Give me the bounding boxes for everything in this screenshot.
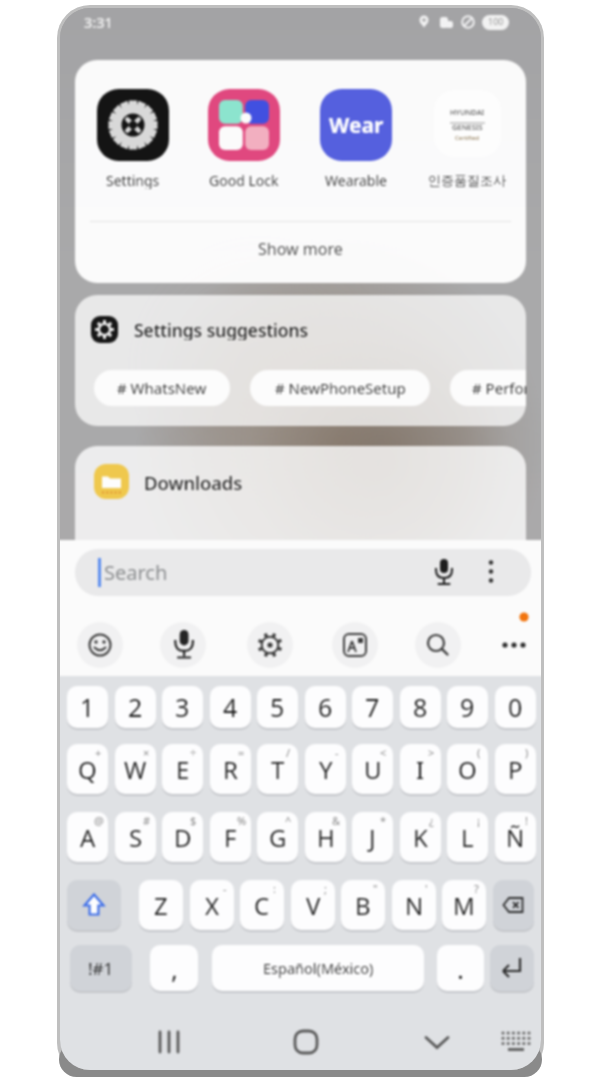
staticText: Downloads (144, 470, 243, 494)
staticText: Good Lock (209, 171, 279, 189)
staticText: ! (525, 813, 528, 828)
staticText: # NewPhoneSetup (275, 378, 406, 398)
staticText: " (373, 881, 378, 896)
staticText: Search (104, 559, 168, 586)
staticText: H (317, 821, 335, 854)
staticText: ¡ (477, 813, 480, 828)
staticText: O (458, 753, 477, 786)
staticText: Ñ (506, 821, 525, 854)
staticText: ÷ (190, 745, 197, 760)
staticText: P (508, 753, 523, 786)
staticText: L (461, 821, 474, 854)
staticText: > (428, 745, 435, 760)
staticText: 6 (318, 690, 333, 724)
staticText: C (254, 889, 270, 922)
staticText: Settings suggestions (134, 318, 309, 340)
staticText: Español(México) (263, 958, 374, 978)
staticText: J (369, 821, 376, 854)
staticText: , (171, 951, 178, 986)
staticText: # Performance (472, 378, 526, 398)
staticText: ) (525, 745, 529, 760)
staticText: V (306, 889, 321, 922)
staticText: N (405, 889, 424, 922)
staticText: ^ (285, 813, 292, 828)
staticText: Z (154, 889, 168, 922)
staticText: Show more (258, 238, 343, 260)
staticText: . (457, 951, 464, 986)
staticText: X (205, 889, 220, 922)
staticText: E (176, 753, 190, 786)
staticText: ' (425, 881, 428, 896)
staticText: G (269, 821, 287, 854)
staticText: & (332, 813, 341, 828)
staticText: 8 (413, 690, 428, 724)
staticText: @ (94, 813, 104, 828)
staticText: GENESIS (452, 122, 483, 132)
staticText: A (80, 821, 96, 854)
staticText: 5 (270, 690, 285, 724)
staticText: 인증품질조사 (428, 172, 506, 188)
staticText: 3:31 (84, 12, 113, 32)
staticText: - (335, 745, 339, 760)
staticText: ( (477, 745, 481, 760)
staticText: Settings (106, 171, 160, 189)
staticText: B (355, 889, 371, 922)
staticText: S (129, 821, 143, 854)
staticText: 100 (488, 15, 504, 27)
staticText: D (174, 821, 192, 854)
staticText: Wear (329, 111, 384, 140)
staticText: : (273, 881, 276, 896)
staticText: + (95, 745, 102, 760)
staticText: Wearable (325, 171, 387, 189)
staticText: % (237, 813, 247, 828)
staticText: < (380, 745, 387, 760)
staticText: T (271, 753, 285, 786)
staticText: R (223, 753, 238, 786)
staticText: × (143, 745, 150, 760)
staticText: 4 (223, 690, 238, 724)
staticText: F (224, 821, 237, 854)
staticText: HYUNDAI (450, 107, 485, 117)
staticText: Q (78, 753, 97, 786)
staticText: 7 (365, 690, 380, 724)
staticText: !#1 (88, 957, 114, 980)
staticText: $ (190, 813, 197, 828)
staticText: U (364, 753, 382, 786)
staticText: 9 (460, 690, 475, 724)
staticText: ? (474, 881, 479, 896)
staticText: K (413, 821, 428, 854)
staticText: W (124, 753, 147, 786)
staticText: M (453, 889, 475, 922)
staticText: 2 (128, 690, 143, 724)
staticText: ; (324, 881, 327, 896)
staticText: ¿ (429, 813, 434, 828)
staticText: * (380, 813, 387, 828)
staticText: I (416, 753, 425, 786)
staticText: 0 (508, 690, 523, 724)
staticText: # (143, 813, 151, 828)
staticText: Certified (455, 134, 480, 142)
staticText: 1 (80, 690, 95, 724)
staticText: # WhatsNew (117, 378, 207, 398)
staticText: = (238, 745, 245, 760)
staticText: - (223, 881, 227, 896)
staticText: Y (319, 753, 333, 786)
staticText: / (286, 745, 291, 760)
staticText: 3 (175, 690, 190, 724)
